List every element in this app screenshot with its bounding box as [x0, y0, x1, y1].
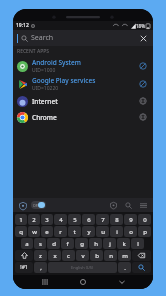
button[interactable]: d — [47, 238, 60, 249]
staticText: . — [124, 264, 126, 272]
staticText: Android System — [32, 58, 81, 67]
button[interactable]: c — [62, 250, 75, 261]
staticText: b — [95, 252, 99, 260]
button[interactable]: u — [96, 226, 109, 237]
staticText: UID=1000 — [32, 67, 56, 74]
button[interactable]: 2 — [28, 214, 40, 225]
button[interactable]: 8 — [110, 214, 123, 225]
staticText: 6 — [87, 216, 91, 224]
button[interactable]: Blocked — [137, 60, 149, 72]
button[interactable]: z — [34, 250, 47, 261]
staticText: q — [19, 228, 23, 236]
button[interactable]: s — [34, 238, 46, 249]
staticText: 19:12 — [16, 22, 29, 29]
button[interactable]: 7 — [96, 214, 109, 225]
staticText: English (US) — [71, 265, 94, 270]
button[interactable]: t — [68, 226, 81, 237]
button[interactable]: Chrome — [13, 109, 153, 125]
button[interactable]: m — [118, 250, 131, 261]
staticText: h — [94, 240, 98, 248]
staticText: !#1 — [20, 264, 28, 271]
staticText: k — [122, 240, 126, 248]
staticText: t — [73, 228, 76, 236]
staticText: 5 — [73, 216, 77, 224]
button[interactable]: l — [131, 238, 144, 249]
button[interactable]: r — [54, 226, 67, 237]
button[interactable]: 1 — [15, 214, 27, 225]
staticText: Internet — [32, 97, 58, 106]
staticText: UID=10220 — [32, 85, 59, 92]
button[interactable]: a — [21, 238, 33, 249]
button[interactable]: Backspace — [132, 250, 151, 261]
button[interactable]: 9 — [124, 214, 137, 225]
button[interactable]: Allowed — [137, 95, 149, 107]
staticText: w — [32, 228, 37, 236]
button[interactable]: Clear search — [138, 33, 149, 44]
button[interactable]: Allowed — [137, 111, 149, 123]
button[interactable]: Recents — [38, 275, 52, 289]
staticText: f — [66, 240, 69, 248]
button[interactable]: k — [117, 238, 130, 249]
button[interactable]: Google Play services — [13, 75, 153, 93]
button[interactable]: !#1 — [15, 262, 33, 273]
button[interactable]: i — [110, 226, 123, 237]
button[interactable]: 4 — [54, 214, 67, 225]
staticText: Google Play services — [32, 76, 96, 85]
staticText: z — [39, 252, 42, 260]
staticText: 0 — [143, 216, 147, 224]
button[interactable]: Internet — [13, 93, 153, 109]
button[interactable]: x — [48, 250, 61, 261]
button[interactable]: 5 — [68, 214, 81, 225]
button[interactable]: y — [82, 226, 95, 237]
button[interactable]: Blocked — [137, 78, 149, 90]
button[interactable]: 0 — [138, 214, 151, 225]
button[interactable]: Home — [76, 275, 90, 289]
button[interactable]: Search — [122, 199, 134, 211]
button[interactable]: , — [34, 262, 47, 273]
button[interactable]: 6 — [82, 214, 95, 225]
button[interactable]: h — [89, 238, 102, 249]
staticText: 2 — [32, 216, 36, 224]
button[interactable]: o — [124, 226, 137, 237]
button[interactable]: b — [90, 250, 103, 261]
staticText: n — [109, 252, 113, 260]
staticText: l — [137, 240, 139, 248]
button[interactable]: Shift — [15, 250, 33, 261]
staticText: p — [143, 228, 147, 236]
staticText: m — [122, 252, 128, 260]
staticText: 9 — [129, 216, 133, 224]
staticText: g — [80, 240, 84, 248]
button[interactable]: e — [41, 226, 53, 237]
button[interactable]: f — [61, 238, 74, 249]
button[interactable]: . — [118, 262, 131, 273]
staticText: u — [101, 228, 105, 236]
button[interactable]: Search — [13, 30, 153, 46]
button[interactable]: Menu — [137, 199, 149, 211]
staticText: j — [109, 240, 111, 248]
button[interactable]: Toggle firewall — [31, 201, 46, 209]
staticText: r — [59, 228, 62, 236]
button[interactable]: English (US) — [48, 262, 117, 273]
button[interactable]: v — [76, 250, 89, 261]
staticText: v — [81, 252, 85, 260]
button[interactable]: Firewall shield — [17, 200, 28, 211]
staticText: c — [67, 252, 70, 260]
staticText: x — [53, 252, 57, 260]
button[interactable]: Android System — [13, 57, 153, 75]
staticText: e — [45, 228, 49, 236]
staticText: Search — [31, 33, 54, 43]
button[interactable]: q — [15, 226, 27, 237]
staticText: o — [129, 228, 133, 236]
staticText: OFF — [33, 203, 40, 208]
button[interactable]: Protection — [107, 199, 119, 211]
button[interactable]: 3 — [41, 214, 53, 225]
button[interactable]: Back — [115, 275, 129, 289]
button[interactable]: j — [103, 238, 116, 249]
staticText: RECENT APPS — [17, 48, 50, 55]
button[interactable]: n — [104, 250, 117, 261]
button[interactable]: p — [138, 226, 151, 237]
button[interactable]: g — [75, 238, 88, 249]
button[interactable]: w — [28, 226, 40, 237]
staticText: 8 — [115, 216, 119, 224]
button[interactable]: Search key — [132, 262, 151, 273]
